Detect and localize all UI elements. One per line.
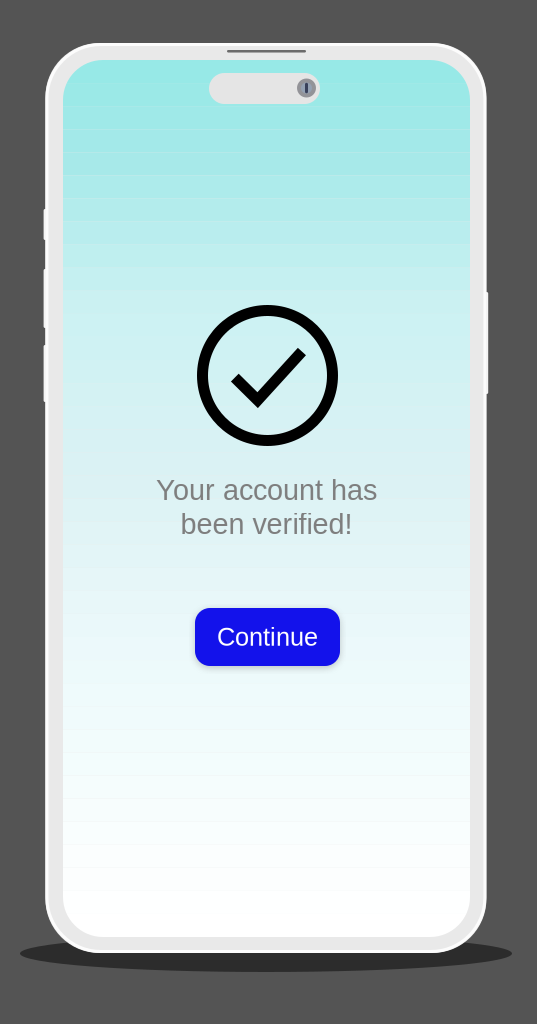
- staticText: been verified!: [180, 508, 352, 540]
- staticText: Continue: [217, 623, 318, 651]
- button[interactable]: Continue: [195, 608, 340, 666]
- staticText: Your account has: [156, 474, 377, 506]
